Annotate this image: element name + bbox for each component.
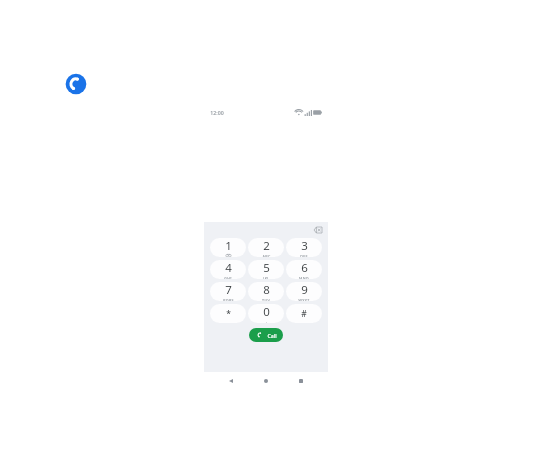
staticText: WXYZ xyxy=(298,298,310,301)
staticText: 12:00 xyxy=(210,109,224,116)
button[interactable]: Backspace xyxy=(312,224,323,235)
button[interactable]: Call xyxy=(249,328,283,342)
staticText: 7 xyxy=(225,282,232,298)
button[interactable]: * xyxy=(210,304,246,323)
staticText: 2 xyxy=(263,238,270,254)
button[interactable]: 3 xyxy=(286,238,322,257)
staticText: JKL xyxy=(263,276,270,279)
staticText: 1 xyxy=(225,238,232,254)
staticText: GHI xyxy=(224,276,232,279)
staticText: PQRS xyxy=(223,298,234,301)
button[interactable]: 1 xyxy=(210,238,246,257)
staticText: ABC xyxy=(262,254,271,257)
button[interactable]: # xyxy=(286,304,322,323)
staticText: 4 xyxy=(225,260,232,276)
staticText: 6 xyxy=(301,260,308,276)
button[interactable]: Home xyxy=(258,373,274,389)
button[interactable]: 2 xyxy=(248,238,284,257)
button[interactable]: 0 xyxy=(248,304,284,323)
staticText: Call xyxy=(267,332,277,339)
button[interactable]: 5 xyxy=(248,260,284,279)
staticText: # xyxy=(301,308,307,320)
staticText: + xyxy=(265,320,268,323)
button[interactable]: Recent apps xyxy=(293,373,309,389)
staticText: 3 xyxy=(301,238,308,254)
button[interactable]: 4 xyxy=(210,260,246,279)
staticText: DEF xyxy=(300,254,308,257)
staticText: 0 xyxy=(263,304,270,320)
button[interactable]: Phone app xyxy=(61,69,91,99)
button[interactable]: 7 xyxy=(210,282,246,301)
button[interactable]: 6 xyxy=(286,260,322,279)
button[interactable]: Back xyxy=(223,373,239,389)
staticText: * xyxy=(226,308,231,320)
staticText: TUV xyxy=(262,298,270,301)
button[interactable]: 8 xyxy=(248,282,284,301)
button[interactable]: 9 xyxy=(286,282,322,301)
staticText: 8 xyxy=(263,282,270,298)
staticText: MNO xyxy=(299,276,309,279)
staticText: 5 xyxy=(263,260,270,276)
staticText: 9 xyxy=(301,282,308,298)
